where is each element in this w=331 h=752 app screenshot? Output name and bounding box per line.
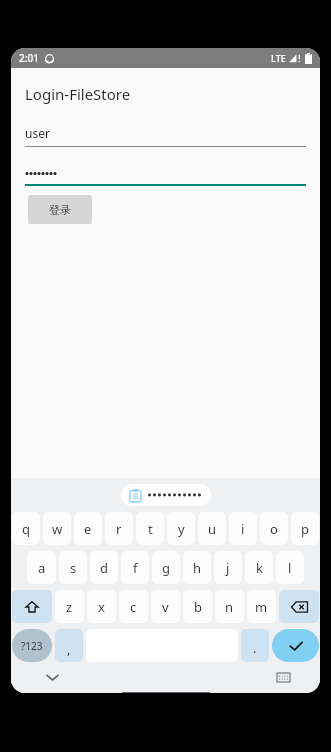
button[interactable]: Backspace <box>279 590 319 623</box>
staticText: o <box>270 520 278 538</box>
staticText: q <box>22 520 30 538</box>
button[interactable]: t <box>136 512 164 545</box>
button[interactable]: e <box>74 512 102 545</box>
button[interactable]: x <box>87 590 116 623</box>
button[interactable] <box>25 168 306 186</box>
staticText: LTE <box>271 52 286 64</box>
button[interactable]: v <box>151 590 180 623</box>
button[interactable]: c <box>119 590 148 623</box>
button[interactable]: d <box>90 551 118 584</box>
staticText: s <box>70 559 77 577</box>
staticText: u <box>208 520 217 538</box>
button[interactable]: f <box>121 551 149 584</box>
button[interactable]: m <box>247 590 276 623</box>
button[interactable]: w <box>43 512 71 545</box>
button[interactable]: k <box>245 551 273 584</box>
staticText: b <box>194 598 202 616</box>
staticText: k <box>256 559 263 577</box>
staticText: Login-FileStore <box>25 84 131 104</box>
staticText: m <box>255 598 268 616</box>
staticText: w <box>52 520 63 538</box>
button[interactable]: Shift <box>12 590 52 623</box>
staticText: i <box>241 520 245 538</box>
staticText: j <box>226 559 230 577</box>
staticText: d <box>100 559 108 577</box>
button[interactable]: r <box>105 512 133 545</box>
staticText: ?123 <box>21 639 43 653</box>
button[interactable]: s <box>59 551 87 584</box>
button[interactable]: q <box>12 512 40 545</box>
staticText: 登录 <box>49 203 71 217</box>
button[interactable]: u <box>198 512 226 545</box>
button[interactable]: g <box>152 551 180 584</box>
staticText: z <box>66 598 73 616</box>
staticText: 2:01 <box>19 51 39 65</box>
button[interactable]: z <box>55 590 84 623</box>
button[interactable]: j <box>214 551 242 584</box>
button[interactable]: , <box>55 629 83 662</box>
button[interactable]: o <box>260 512 288 545</box>
staticText: x <box>98 598 105 616</box>
staticText: l <box>288 559 292 577</box>
staticText: , <box>67 640 71 658</box>
staticText: e <box>84 520 92 538</box>
staticText: user <box>25 125 50 141</box>
staticText: f <box>133 559 138 577</box>
button[interactable]: ?123 <box>12 629 52 662</box>
staticText: t <box>148 520 153 538</box>
button[interactable]: Hide keyboard <box>41 666 63 688</box>
button[interactable]: 登录 <box>28 195 92 224</box>
button[interactable]: Enter <box>272 629 319 662</box>
button[interactable]: n <box>215 590 244 623</box>
staticText: c <box>130 598 137 616</box>
button[interactable]: user <box>25 125 306 147</box>
staticText: v <box>162 598 169 616</box>
button[interactable]: p <box>291 512 319 545</box>
button[interactable]: b <box>183 590 212 623</box>
button[interactable]: h <box>183 551 211 584</box>
button[interactable] <box>121 484 211 506</box>
button[interactable]: y <box>167 512 195 545</box>
staticText: n <box>225 598 234 616</box>
staticText: a <box>38 559 46 577</box>
button[interactable]: i <box>229 512 257 545</box>
button[interactable]: l <box>276 551 304 584</box>
button[interactable]: . <box>241 629 269 662</box>
staticText: h <box>193 559 202 577</box>
staticText: p <box>301 520 309 538</box>
staticText: r <box>116 520 122 538</box>
staticText: g <box>162 559 170 577</box>
staticText: y <box>178 520 185 538</box>
button[interactable]: Change keyboard <box>272 666 294 688</box>
button[interactable]: a <box>27 551 56 584</box>
staticText: . <box>253 639 257 657</box>
